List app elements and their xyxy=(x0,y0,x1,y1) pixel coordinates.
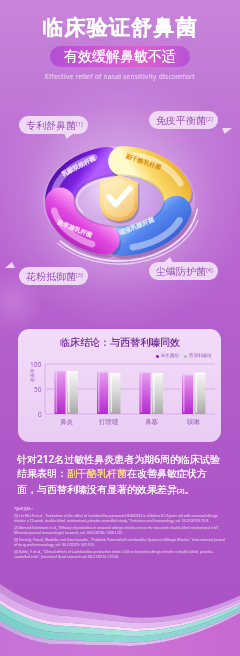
staticText: [2] Ahmadi Soleimani et al., "Efficacy o… xyxy=(14,525,226,535)
staticText: 有效缓解鼻敏不适 xyxy=(64,48,176,66)
staticText: Effective relief of nasal sensitivity di… xyxy=(45,72,195,81)
staticText: 100 xyxy=(30,360,42,369)
staticText: 改善率 xyxy=(30,368,36,382)
staticText: 鼻塞 xyxy=(145,418,158,426)
staticText: [2] xyxy=(206,115,213,122)
staticText: 西替利嗪组 xyxy=(189,353,212,359)
staticText: [3] xyxy=(76,271,83,278)
staticText: 0 xyxy=(38,410,42,419)
staticText: 尘螨防护菌 xyxy=(156,265,206,278)
staticText: 唾液乳酸杆菌 xyxy=(118,215,156,237)
button[interactable]: 花粉抵御菌 xyxy=(19,262,88,285)
button[interactable]: 免疫平衡菌 xyxy=(149,111,218,134)
staticText: 专利舒鼻菌 xyxy=(26,119,76,132)
staticText: 益生菌组 xyxy=(161,353,179,359)
staticText: 临床结论：与西替利嗪同效 xyxy=(60,336,180,349)
staticText: 临床验证舒鼻菌 xyxy=(42,15,198,41)
staticText: [1] xyxy=(76,120,83,127)
staticText: 副干酪乳杆菌 xyxy=(125,152,163,172)
staticText: 乳酸双歧杆菌 xyxy=(60,154,98,178)
staticText: [4] Bohle, P. et al., "Clinical effects … xyxy=(14,549,226,559)
staticText: 鼻炎 xyxy=(60,418,73,426)
staticText: 免疫平衡菌 xyxy=(156,114,206,127)
staticText: 针对212名过敏性鼻炎患者为期6周的临床试验结果表明：副干酪乳杆菌在改善鼻敏症状… xyxy=(17,452,223,496)
staticText: *参考文献： xyxy=(14,506,34,511)
button[interactable]: 尘螨防护菌 xyxy=(149,257,218,280)
staticText: 鼠李糖乳杆菌 xyxy=(56,218,94,240)
staticText: 花粉抵御菌 xyxy=(26,270,76,283)
staticText: [1] Lin Wei-Yi et al., "Evaluation of th… xyxy=(14,513,226,523)
staticText: [4] xyxy=(206,266,213,273)
staticText: 50 xyxy=(34,385,42,394)
staticText: 咳嗽 xyxy=(187,418,200,426)
staticText: 打喷嚏 xyxy=(99,418,119,426)
staticText: [3] Demoly, Pascal, Wachtler, and Sven L… xyxy=(14,537,226,547)
button[interactable]: 专利舒鼻菌 xyxy=(19,116,88,139)
